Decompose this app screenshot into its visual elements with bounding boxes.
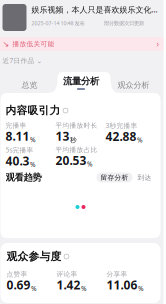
staticText: 总览 (21, 80, 37, 90)
staticText: 评论率 (56, 270, 77, 278)
staticText: % (137, 135, 143, 144)
staticText: 3秒完播率 (105, 121, 137, 130)
staticText: 观众分析 (117, 80, 149, 90)
button[interactable]: 流量分析 (54, 72, 107, 93)
staticText: % (31, 284, 37, 293)
staticText: % (30, 135, 36, 144)
button[interactable]: 到达 (135, 172, 153, 182)
staticText: ↘ (2, 39, 9, 49)
staticText: % (87, 159, 93, 168)
staticText: 0.69 (6, 277, 30, 293)
staticText: 8.11 (5, 128, 29, 144)
staticText: 平均播放时长 (55, 121, 97, 130)
staticText: 部分数据次日更新 (104, 20, 144, 26)
staticText: 13 (55, 128, 69, 144)
staticText: 2025-07-14 10:48 发布 (31, 20, 84, 27)
staticText: 秒 (70, 136, 77, 144)
staticText: › (156, 39, 158, 49)
button[interactable]: 总览 (7, 78, 51, 92)
staticText: 5s完播率 (5, 145, 33, 154)
button[interactable]: ↘ (0, 37, 163, 51)
staticText: 20.53 (55, 152, 86, 168)
staticText: 40.3 (5, 153, 29, 169)
staticText: % (138, 284, 144, 293)
button[interactable]: 观众分析 (111, 78, 155, 92)
staticText: 1.42 (56, 277, 80, 293)
staticText: 观众参与度 (6, 250, 61, 263)
staticText: 娱乐视频，本人只是喜欢娱乐文化。#Vlog··· (31, 4, 163, 15)
staticText: 到达 (137, 173, 151, 182)
staticText: % (30, 160, 36, 169)
staticText: 留存分析 (100, 173, 128, 182)
staticText: 流量分析 (63, 75, 99, 87)
staticText: 平均播放占比 (55, 146, 97, 154)
staticText: % (81, 284, 87, 293)
staticText: 11.06 (106, 277, 137, 293)
staticText: 分享率 (106, 270, 127, 278)
button[interactable]: 留存分析 (96, 172, 132, 182)
staticText: 近7日作品 ⌄ (2, 56, 42, 65)
staticText: 点赞率 (6, 270, 27, 278)
staticText: 完播率 (5, 121, 26, 130)
staticText: 42.88 (105, 128, 136, 144)
staticText: 观看趋势 (5, 172, 41, 183)
button[interactable]: 近7日作品 ⌄ (2, 56, 42, 65)
staticText: 内容吸引力 (5, 104, 60, 117)
staticText: 播放低关可能 (12, 40, 54, 48)
